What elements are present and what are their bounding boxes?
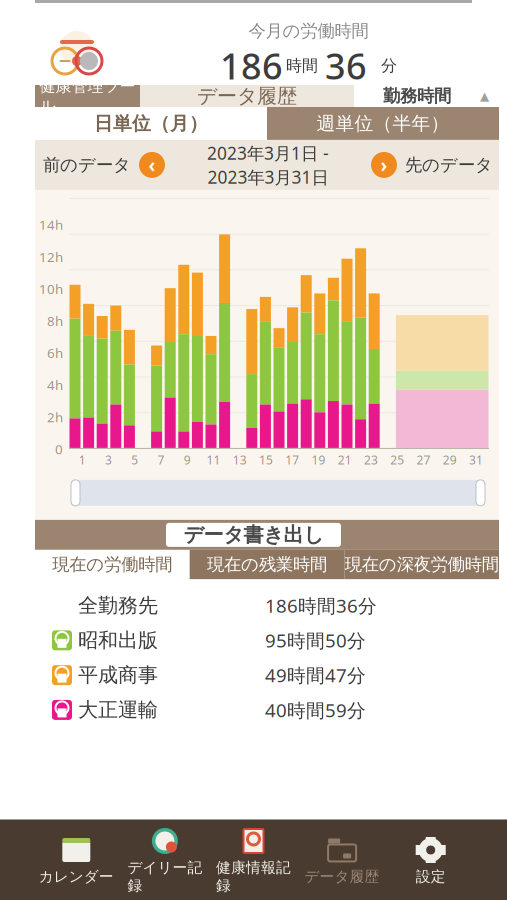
button[interactable]: › bbox=[371, 152, 493, 178]
staticText: 9 bbox=[184, 452, 191, 468]
staticText: 全勤務先 bbox=[78, 593, 158, 618]
staticText: 13 bbox=[233, 452, 247, 468]
button[interactable]: データ書き出し bbox=[166, 523, 341, 547]
staticText: 2023年3月31日 bbox=[207, 165, 328, 188]
staticText: 週単位（半年） bbox=[316, 112, 449, 135]
staticText: 今月の労働時間 bbox=[248, 20, 368, 42]
staticText: 8h bbox=[47, 312, 63, 330]
staticText: 時間 bbox=[286, 56, 318, 75]
staticText: 31 bbox=[469, 452, 483, 468]
staticText: 設定 bbox=[416, 867, 446, 885]
staticText: 21 bbox=[338, 452, 352, 468]
staticText: 1 bbox=[79, 452, 86, 468]
staticText: 3 bbox=[105, 452, 112, 468]
staticText: 15 bbox=[259, 452, 273, 468]
staticText: 10h bbox=[39, 280, 63, 298]
staticText: 日単位（月） bbox=[94, 112, 208, 135]
staticText: 36 bbox=[325, 42, 367, 89]
button[interactable]: 勤務時間 bbox=[354, 85, 499, 107]
staticText: 2h bbox=[47, 408, 63, 426]
staticText: 健康管理ツール bbox=[39, 76, 135, 116]
staticText: 25 bbox=[390, 452, 404, 468]
staticText: 12h bbox=[39, 248, 63, 266]
staticText: 17 bbox=[285, 452, 299, 468]
staticText: デイリー記録 bbox=[127, 858, 202, 894]
staticText: 27 bbox=[416, 452, 430, 468]
staticText: ▲ bbox=[480, 89, 489, 103]
staticText: 40時間59分 bbox=[265, 697, 366, 722]
staticText: 現在の労働時間 bbox=[52, 554, 172, 575]
button[interactable]: カレンダー bbox=[32, 828, 121, 893]
staticText: カレンダー bbox=[39, 867, 114, 885]
staticText: 4h bbox=[47, 376, 63, 394]
staticText: データ履歴 bbox=[197, 84, 297, 108]
staticText: データ履歴 bbox=[305, 867, 380, 885]
staticText: 19 bbox=[311, 452, 325, 468]
staticText: 186 bbox=[220, 42, 283, 89]
staticText: 29 bbox=[443, 452, 457, 468]
staticText: 11 bbox=[206, 452, 220, 468]
staticText: 大正運輸 bbox=[78, 698, 158, 722]
button[interactable]: 週単位（半年） bbox=[267, 107, 499, 140]
button[interactable]: 日単位（月） bbox=[35, 107, 267, 140]
staticText: 186時間36分 bbox=[265, 593, 377, 618]
button[interactable]: 健康管理ツール bbox=[35, 85, 140, 107]
staticText: 49時間47分 bbox=[265, 663, 366, 687]
staticText: 6h bbox=[47, 344, 63, 362]
staticText: 0 bbox=[55, 440, 63, 458]
staticText: 分 bbox=[381, 56, 397, 75]
button[interactable]: 前のデータ bbox=[43, 152, 165, 178]
staticText: 現在の残業時間 bbox=[207, 554, 327, 575]
staticText: 現在の深夜労働時間 bbox=[345, 554, 499, 575]
button[interactable]: 健康情報記録 bbox=[209, 819, 298, 900]
button[interactable]: データ履歴 bbox=[140, 85, 354, 107]
staticText: データ書き出し bbox=[183, 523, 323, 547]
staticText: 前のデータ bbox=[43, 154, 131, 176]
button[interactable]: デイリー記録 bbox=[121, 819, 209, 900]
staticText: 勤務時間 bbox=[383, 85, 451, 107]
staticText: ‹ bbox=[148, 152, 155, 177]
staticText: 7 bbox=[157, 452, 164, 468]
button[interactable]: データ履歴 bbox=[298, 828, 386, 893]
staticText: 14h bbox=[39, 216, 63, 233]
staticText: 5 bbox=[131, 452, 138, 468]
button[interactable]: 設定 bbox=[386, 828, 475, 893]
staticText: 昭和出版 bbox=[78, 628, 158, 653]
staticText: 23 bbox=[364, 452, 378, 468]
staticText: 2023年3月1日 - bbox=[207, 141, 329, 164]
button[interactable]: 現在の残業時間 bbox=[190, 550, 344, 579]
button[interactable]: 現在の深夜労働時間 bbox=[344, 550, 499, 579]
staticText: 健康情報記録 bbox=[216, 858, 291, 894]
staticText: › bbox=[380, 152, 387, 177]
staticText: 先のデータ bbox=[405, 154, 493, 176]
button[interactable]: 現在の労働時間 bbox=[35, 550, 190, 579]
staticText: 平成商事 bbox=[78, 663, 158, 687]
staticText: 95時間50分 bbox=[265, 628, 366, 653]
